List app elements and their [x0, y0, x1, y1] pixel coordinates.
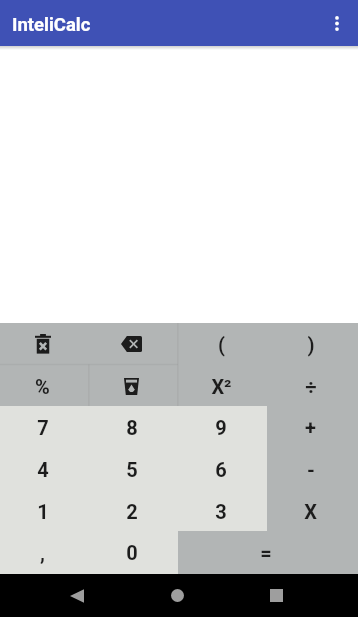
button[interactable]: Recents	[252, 574, 300, 617]
staticText: (	[218, 333, 225, 356]
button[interactable]: 6	[178, 448, 268, 490]
staticText: 1	[37, 500, 49, 523]
button[interactable]: 4	[0, 448, 89, 490]
staticText: 3	[215, 500, 227, 523]
staticText: =	[260, 541, 272, 564]
staticText: %	[35, 375, 50, 398]
button[interactable]: 8	[89, 406, 178, 448]
button[interactable]: 2	[89, 490, 178, 532]
button[interactable]: Back	[53, 574, 101, 617]
staticText: 8	[126, 416, 138, 439]
button[interactable]: 9	[178, 406, 268, 448]
button[interactable]: Backspace	[89, 323, 178, 365]
button[interactable]: X	[267, 490, 358, 532]
staticText: 5	[126, 458, 138, 481]
button[interactable]: 0	[89, 531, 178, 574]
staticText: ,	[40, 541, 45, 564]
button[interactable]: (	[178, 323, 268, 365]
staticText: InteliCalc	[12, 14, 91, 36]
button[interactable]: )	[267, 323, 358, 365]
button[interactable]: 1	[0, 490, 89, 532]
button[interactable]: 3	[178, 490, 268, 532]
button[interactable]: -	[267, 448, 358, 490]
button[interactable]: More options	[316, 0, 358, 46]
staticText: X	[304, 500, 317, 523]
button[interactable]: 5	[89, 448, 178, 490]
button[interactable]: ,	[0, 531, 89, 574]
staticText: 0	[126, 541, 138, 564]
staticText: ÷	[305, 375, 317, 398]
button[interactable]: ÷	[267, 365, 358, 407]
staticText: 9	[215, 416, 227, 439]
button[interactable]: +	[267, 406, 358, 448]
staticText: X²	[211, 375, 232, 398]
staticText: 6	[215, 458, 227, 481]
button[interactable]: Clear memory	[89, 365, 178, 407]
button[interactable]: Home	[153, 574, 201, 617]
button[interactable]: Clear all	[0, 323, 89, 365]
staticText: 2	[126, 500, 138, 523]
staticText: )	[307, 333, 315, 356]
staticText: 7	[37, 416, 49, 439]
staticText: 4	[37, 458, 49, 481]
button[interactable]: X²	[178, 365, 268, 407]
button[interactable]: =	[178, 531, 358, 574]
staticText: +	[305, 416, 316, 439]
button[interactable]: 7	[0, 406, 89, 448]
staticText: -	[307, 458, 315, 481]
button[interactable]: %	[0, 365, 89, 407]
